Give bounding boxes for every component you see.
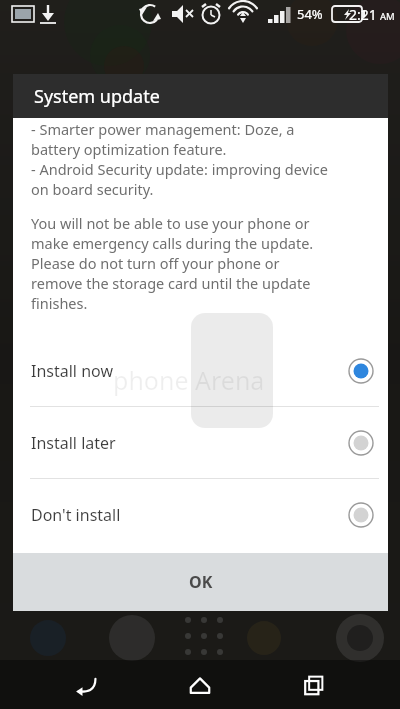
staticText: Don't install [31,504,348,526]
staticText: Install now [31,360,348,382]
staticText: 54% [297,5,323,23]
staticText: OK [189,571,213,593]
staticText: AM [380,10,395,23]
staticText: finishes. [31,293,88,313]
staticText: Please do not turn off your phone or [31,253,280,273]
button[interactable]: OK [13,553,388,611]
staticText: remove the storage card until the update [31,273,311,293]
staticText: Install later [31,432,348,454]
staticText: 2:21 [349,5,377,24]
staticText: on board security. [31,179,154,199]
button[interactable]: Install later [13,407,388,478]
button[interactable]: Recent apps [286,660,342,709]
staticText: System update [34,84,160,109]
button[interactable]: Back [58,660,114,709]
staticText: phone Arena [113,363,265,397]
button[interactable]: Don't install [13,479,388,550]
staticText: make emergency calls during the update. [31,233,314,253]
staticText: - Android Security update: improving dev… [31,159,328,179]
button[interactable]: Home [172,660,228,709]
button[interactable]: Install now [13,335,388,406]
staticText: battery optimization feature. [31,139,227,159]
staticText: - Smarter power management: Doze, a [31,119,295,139]
staticText: You will not be able to use your phone o… [31,213,310,233]
